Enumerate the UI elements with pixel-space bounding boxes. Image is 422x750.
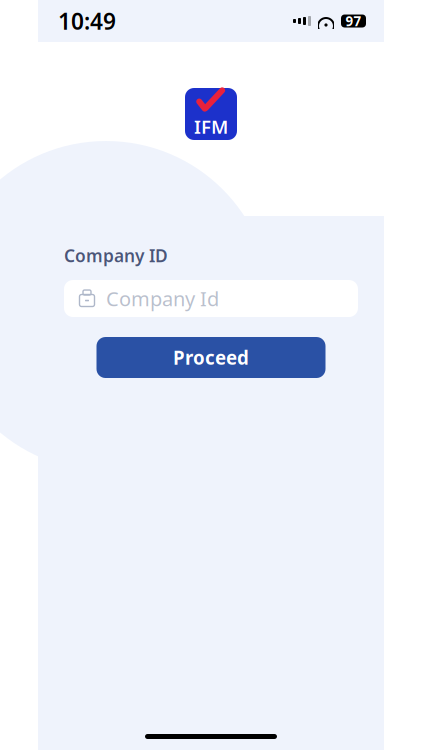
- button[interactable]: Proceed: [96, 337, 325, 378]
- staticText: 97: [345, 12, 361, 30]
- staticText: IFM: [194, 114, 228, 139]
- staticText: Proceed: [173, 345, 249, 370]
- staticText: 10:49: [58, 6, 116, 36]
- staticText: Company ID: [64, 244, 168, 267]
- staticText: Company Id: [106, 285, 219, 312]
- button[interactable]: Company Id: [64, 280, 358, 317]
